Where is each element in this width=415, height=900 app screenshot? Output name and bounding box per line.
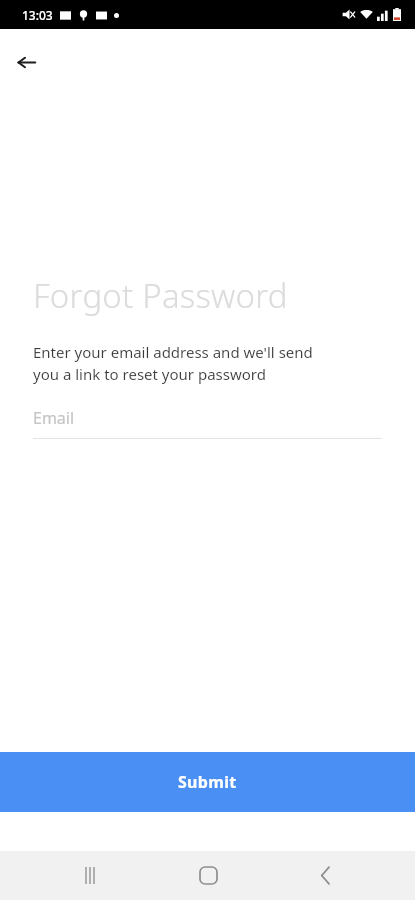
staticText: 13:03 (22, 7, 53, 23)
button[interactable]: Back (10, 46, 42, 78)
staticText: Submit (178, 771, 237, 793)
button[interactable]: Submit (0, 752, 415, 812)
staticText: Email (33, 407, 75, 429)
button[interactable]: Home (180, 851, 236, 900)
staticText: Forgot Password (33, 273, 288, 318)
button[interactable]: Recent apps (62, 851, 118, 900)
button[interactable]: Email (33, 407, 382, 439)
button[interactable]: Back (297, 851, 353, 900)
staticText: Enter your email address and we'll send … (33, 342, 313, 385)
